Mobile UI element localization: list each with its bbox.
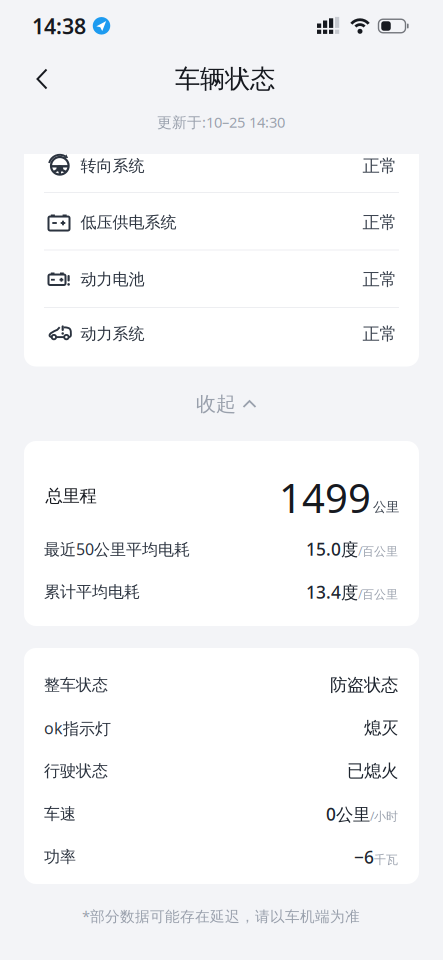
staticText: 整车状态: [44, 675, 108, 695]
staticText: 熄灭: [364, 717, 398, 739]
button[interactable]: Back: [24, 61, 60, 97]
staticText: 防盗状态: [330, 674, 398, 696]
staticText: 14:38: [32, 12, 86, 40]
staticText: 已熄火: [347, 760, 398, 782]
staticText: 公里: [373, 499, 399, 515]
staticText: 千瓦: [374, 852, 398, 867]
staticText: 收起: [196, 392, 236, 416]
staticText: 正常: [362, 155, 396, 177]
staticText: 行驶状态: [44, 761, 108, 781]
staticText: 车速: [44, 804, 76, 824]
staticText: 最近50公里平均电耗: [44, 538, 190, 560]
staticText: −6: [354, 845, 374, 868]
staticText: /百公里: [358, 543, 398, 559]
staticText: 更新于:10–25 14:30: [157, 112, 285, 132]
staticText: 0公里: [326, 802, 370, 825]
staticText: 累计平均电耗: [44, 582, 140, 602]
staticText: 动力电池: [80, 270, 144, 289]
staticText: 转向系统: [80, 156, 144, 176]
staticText: ok指示灯: [44, 717, 111, 739]
staticText: 15.0度: [306, 537, 358, 560]
staticText: 正常: [362, 269, 396, 290]
staticText: 动力系统: [80, 324, 144, 344]
button[interactable]: 收起: [181, 387, 271, 421]
staticText: 1499: [279, 471, 371, 524]
staticText: 低压供电系统: [80, 213, 176, 232]
staticText: 总里程: [45, 485, 96, 507]
staticText: *部分数据可能存在延迟，请以车机端为准: [82, 906, 360, 926]
staticText: /小时: [370, 808, 398, 824]
staticText: 功率: [44, 847, 76, 867]
staticText: 正常: [362, 323, 396, 345]
staticText: 正常: [362, 212, 396, 233]
staticText: 车辆状态: [175, 63, 275, 94]
staticText: 13.4度: [306, 580, 358, 603]
staticText: /百公里: [358, 586, 398, 602]
